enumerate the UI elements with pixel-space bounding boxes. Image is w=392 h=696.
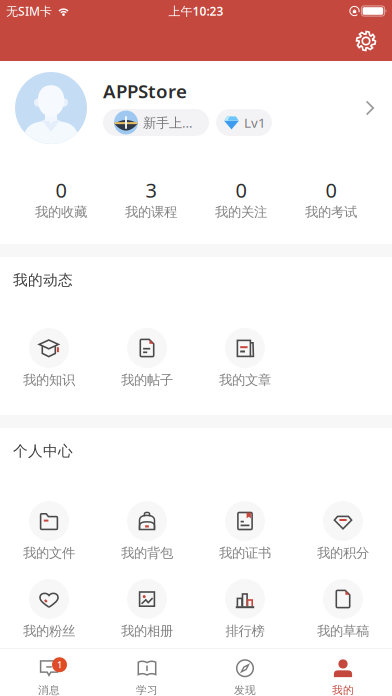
staticText: 上午10:23	[168, 3, 223, 19]
button[interactable]: 我的积分	[294, 501, 392, 559]
staticText: 我的背包	[121, 545, 173, 561]
staticText: 我的	[332, 684, 354, 696]
staticText: 0	[325, 177, 336, 203]
staticText: 1	[57, 659, 62, 671]
staticText: 我的文章	[219, 372, 271, 388]
button[interactable]: 我的文章	[196, 328, 294, 386]
staticText: 0	[235, 177, 246, 203]
staticText: 我的积分	[317, 545, 369, 561]
staticText: 我的收藏	[35, 204, 87, 220]
staticText: 无SIM卡	[6, 3, 52, 19]
button[interactable]: 0	[286, 183, 376, 218]
button[interactable]: 3	[106, 183, 196, 218]
staticText: 我的文件	[23, 545, 75, 561]
staticText: 我的关注	[215, 204, 267, 220]
button[interactable]: 设置	[347, 25, 385, 57]
staticText: 消息	[38, 684, 60, 696]
button[interactable]: 发现	[196, 648, 294, 696]
staticText: 我的知识	[23, 372, 75, 388]
button[interactable]: 0	[16, 183, 106, 218]
staticText: 发现	[234, 684, 256, 696]
staticText: 我的证书	[219, 545, 271, 561]
staticText: 我的草稿	[317, 623, 369, 639]
button[interactable]: 我的	[294, 648, 392, 696]
staticText: 3	[145, 177, 156, 203]
staticText: 学习	[136, 684, 158, 696]
staticText: 我的考试	[305, 204, 357, 220]
staticText: 0	[55, 177, 66, 203]
button[interactable]: 我的帖子	[98, 328, 196, 386]
staticText: Lv1	[244, 114, 266, 131]
button[interactable]: 我的粉丝	[0, 579, 98, 637]
button[interactable]: 我的草稿	[294, 579, 392, 637]
staticText: 个人中心	[13, 442, 73, 460]
staticText: 我的粉丝	[23, 623, 75, 639]
button[interactable]: 0	[196, 183, 286, 218]
button[interactable]: 我的知识	[0, 328, 98, 386]
button[interactable]: 我的证书	[196, 501, 294, 559]
button[interactable]: 我的文件	[0, 501, 98, 559]
staticText: 排行榜	[225, 623, 264, 639]
button[interactable]: 学习	[98, 648, 196, 696]
button[interactable]: APPStore	[0, 61, 392, 155]
staticText: 我的动态	[13, 271, 73, 289]
button[interactable]: 排行榜	[196, 579, 294, 637]
button[interactable]: 1	[0, 648, 98, 696]
staticText: 我的帖子	[121, 372, 173, 388]
staticText: 新手上…	[143, 114, 193, 131]
button[interactable]: 我的相册	[98, 579, 196, 637]
staticText: 我的相册	[121, 623, 173, 639]
button[interactable]: 我的背包	[98, 501, 196, 559]
staticText: APPStore	[103, 79, 187, 103]
staticText: 我的课程	[125, 204, 177, 220]
